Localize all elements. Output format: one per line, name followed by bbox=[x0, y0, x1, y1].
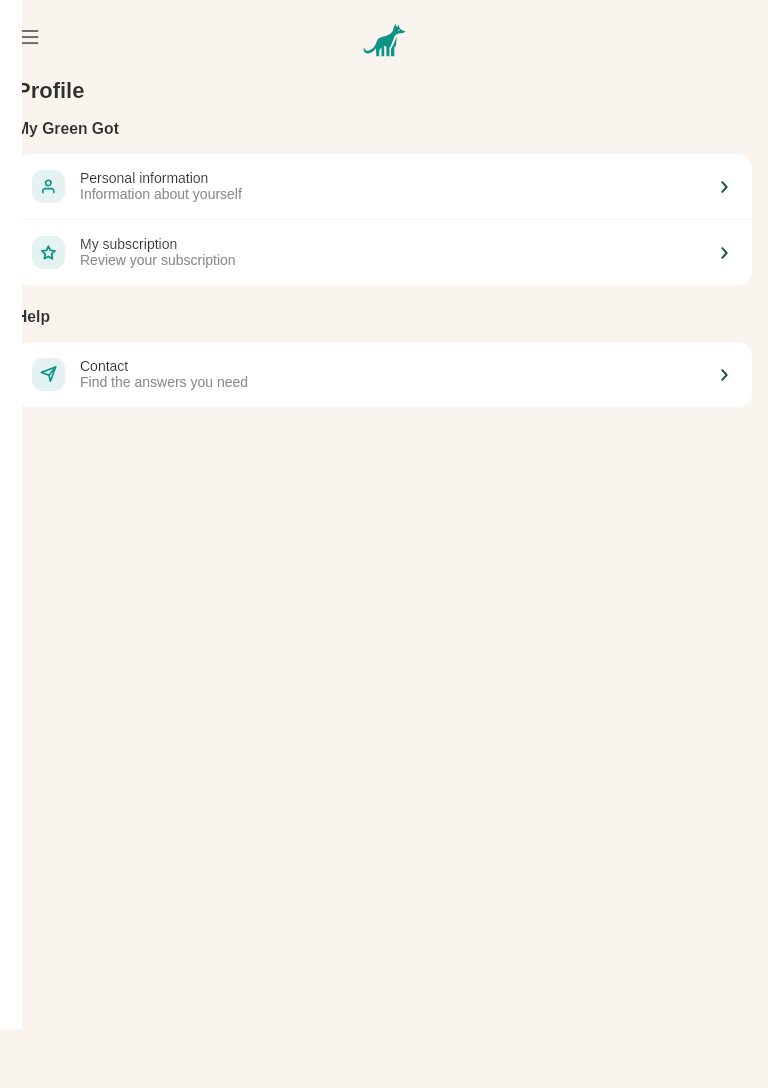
staticText: Help bbox=[16, 308, 50, 326]
button[interactable]: My subscription bbox=[16, 220, 752, 285]
staticText: Personal information bbox=[80, 170, 209, 186]
staticText: Profile bbox=[16, 78, 85, 103]
button[interactable]: Contact bbox=[16, 342, 752, 407]
staticText: Find the answers you need bbox=[80, 374, 249, 390]
staticText: Contact bbox=[80, 358, 129, 374]
staticText: My Green Got bbox=[16, 120, 119, 138]
button[interactable]: Personal information bbox=[16, 154, 752, 219]
staticText: My subscription bbox=[80, 236, 178, 252]
button[interactable]: Open navigation menu bbox=[13, 21, 45, 53]
staticText: Information about yourself bbox=[80, 186, 242, 202]
staticText: Review your subscription bbox=[80, 252, 236, 268]
